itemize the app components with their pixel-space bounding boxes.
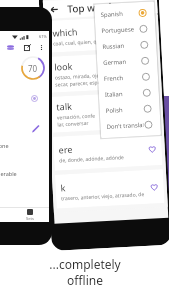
staticText: de, donde, adónde, adónde [59,154,124,164]
staticText: ostazo, mirada, ojea secar, parecer, esp… [55,72,103,89]
button[interactable]: Sets [26,209,34,221]
button[interactable]: Polish [99,100,160,119]
staticText: coal, cual, quien, que [53,38,103,48]
staticText: 70 [28,63,38,74]
button[interactable]: More options [38,44,45,51]
staticText: nore than one [0,142,9,149]
staticText: ...completely [49,256,121,272]
staticText: look [54,60,74,73]
button[interactable]: Share [24,44,31,51]
button[interactable]: Portuguese [95,20,156,39]
button[interactable]: Favourite [147,144,157,154]
button[interactable]: Russian [96,36,157,55]
button[interactable]: German [97,52,158,71]
button[interactable]: Italian [98,84,159,103]
staticText: k [60,181,66,193]
staticText: French [104,74,124,83]
staticText: Don't translate [106,121,144,131]
staticText: German [103,58,126,67]
staticText: which [52,25,78,39]
staticText: Russian [102,42,124,51]
button[interactable]: Favourite [149,182,159,192]
staticText: ere [58,143,73,155]
button[interactable]: talk [51,91,161,133]
button[interactable]: look [49,51,158,93]
button[interactable]: French [98,68,158,87]
staticText: Polish [105,106,123,115]
button[interactable]: Back [49,4,59,15]
button[interactable]: which [47,15,156,53]
staticText: trasero, anterior, viejo, atrasado, de [61,191,145,202]
staticText: Italian [105,90,123,99]
button[interactable]: Spanish [94,4,155,23]
button[interactable]: k [55,169,165,209]
staticText: Spanish [100,10,124,19]
button[interactable]: Don't translate [100,116,161,135]
staticText: offline [67,272,103,288]
staticText: Portuguese [101,25,135,35]
staticText: Top words [67,0,118,16]
button[interactable]: App logo [7,44,14,51]
staticText: 61% [39,34,47,39]
staticText: versación, confe lar, conversar [57,112,96,128]
staticText: Sets [26,216,34,221]
staticText: talk [56,100,73,112]
staticText: d, indecipherable [0,170,17,177]
button[interactable]: ere [53,131,163,171]
